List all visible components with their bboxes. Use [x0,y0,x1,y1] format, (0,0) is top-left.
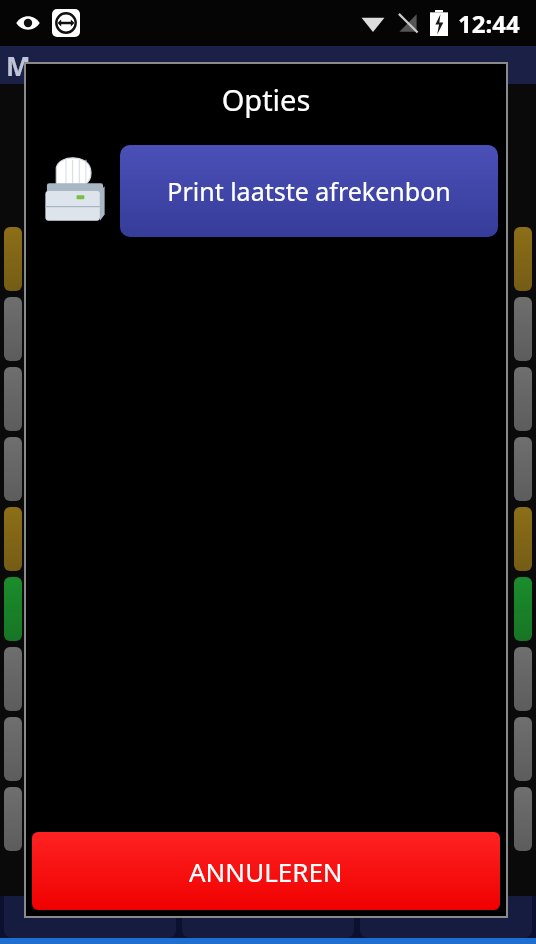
staticText: ANNULEREN [189,854,343,889]
button[interactable]: Navigatie 3 [360,896,532,938]
staticText: M [6,48,31,83]
staticText: Print laatste afrekenbon [167,174,451,208]
staticText: 12:44 [458,7,520,40]
button[interactable]: Print laatste afrekenbon [120,145,498,237]
button[interactable]: ANNULEREN [32,832,500,910]
staticText: Opties [24,80,508,119]
button[interactable]: Navigatie 1 [4,896,176,938]
button[interactable]: Navigatie 2 [182,896,354,938]
